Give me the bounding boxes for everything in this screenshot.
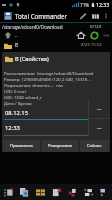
button[interactable]: Panels [89, 10, 101, 22]
staticText: 12:33 [5, 124, 20, 132]
button[interactable]: Home [75, 30, 86, 40]
button[interactable]: Применить [3, 140, 40, 152]
button[interactable]: Pick time [89, 119, 110, 137]
staticText: archive.zip [15, 72, 38, 78]
staticText: GID: 1028 sdcard_r [4, 94, 43, 100]
staticText: 8/23 15:52 [81, 42, 102, 48]
staticText: Применить [10, 143, 34, 149]
button[interactable]: New folder [32, 184, 48, 200]
staticText: ••• [97, 126, 102, 131]
button[interactable]: Copy to other panel [101, 30, 111, 40]
staticText: .. [15, 32, 18, 38]
staticText: Total Commander [15, 12, 68, 20]
staticText: Реверсивно [48, 143, 73, 149]
button[interactable]: Menu [96, 184, 112, 200]
button[interactable]: Edit [77, 10, 89, 22]
button[interactable]: Refresh [89, 30, 100, 40]
staticText: ••• [97, 107, 102, 112]
button[interactable]: file.pdf [0, 50, 112, 60]
staticText: UID: 0 root [4, 88, 27, 94]
button[interactable]: Реверсивно [42, 140, 78, 152]
staticText: 12:33 [96, 1, 110, 8]
staticText: file.pdf [15, 52, 31, 58]
staticText: B (Свойства) [15, 55, 49, 63]
staticText: 0/123 [90, 24, 102, 30]
staticText: Сейчас [87, 143, 102, 149]
staticText: 10.04.15 [85, 72, 102, 78]
button[interactable]: IMG-1.jpg [0, 60, 112, 70]
staticText: Расположение: /storage/sdcard0/Download [4, 70, 94, 76]
button[interactable]: archive.zip [0, 70, 112, 80]
staticText: /storage/sdcard0/Download [2, 24, 63, 30]
staticText: Разрешения: drwxrws--- rws [4, 82, 64, 88]
staticText: Дата / Время: [4, 100, 33, 106]
button[interactable]: Pick date [89, 100, 110, 118]
staticText: 71% [80, 2, 90, 8]
button[interactable]: Up one level [3, 30, 13, 40]
button[interactable]: Copy [16, 184, 32, 200]
staticText: 08.12.15 [5, 109, 29, 117]
staticText: Размер: 129030649408 (120,2 GB), 15318..… [4, 76, 91, 82]
button[interactable]: Select [0, 184, 16, 200]
button[interactable]: Properties [64, 184, 80, 200]
staticText: B [15, 42, 18, 48]
button[interactable]: Apps [80, 184, 96, 200]
button[interactable]: Delete [48, 184, 64, 200]
button[interactable]: B [0, 40, 112, 50]
button[interactable]: More options [101, 11, 111, 21]
button[interactable]: Сейчас [80, 140, 109, 152]
